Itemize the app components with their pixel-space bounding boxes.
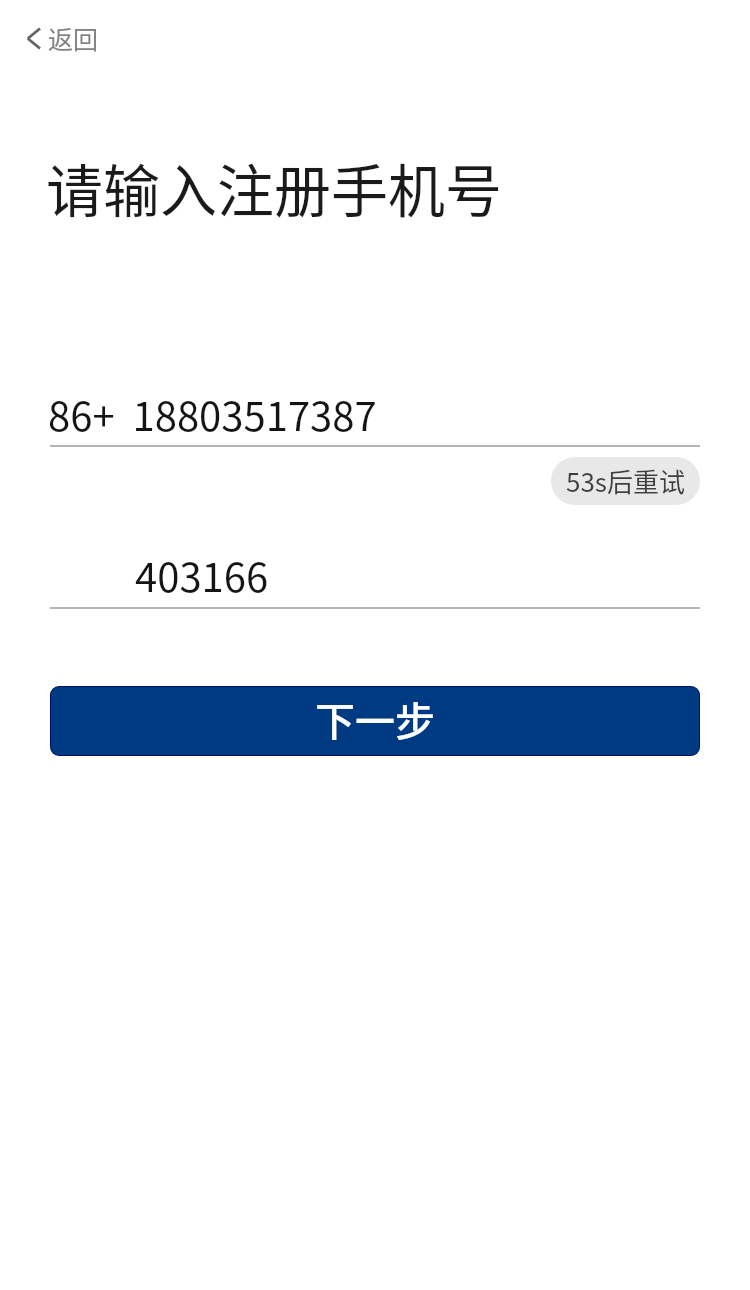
staticText: 返回: [48, 20, 99, 56]
button[interactable]: Back: [14, 10, 111, 66]
button[interactable]: 下一步: [51, 687, 699, 755]
staticText: 403166: [135, 546, 269, 604]
staticText: 下一步: [315, 690, 435, 748]
button[interactable]: 53s后重试: [551, 457, 700, 505]
staticText: 请输入注册手机号: [46, 146, 502, 229]
staticText: 86+ 18803517387: [48, 385, 377, 443]
staticText: 53s后重试: [566, 462, 686, 500]
